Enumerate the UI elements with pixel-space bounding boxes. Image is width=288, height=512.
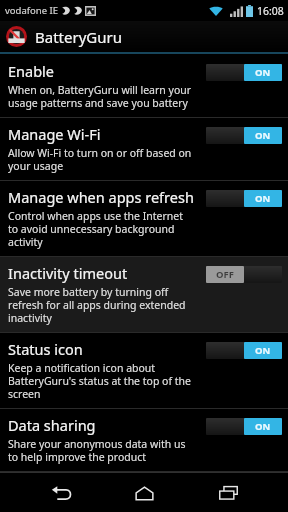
staticText: ON [255,66,271,79]
button[interactable]: Toggle on [206,64,282,81]
button[interactable]: Recent apps [205,476,251,510]
staticText: Share your anonymous data with us to hel… [8,437,186,464]
button[interactable]: Toggle on [206,190,282,207]
button[interactable]: Manage Wi-Fi [0,118,288,180]
button[interactable]: Manage when apps refresh [0,181,288,256]
staticText: Manage when apps refresh [8,187,194,207]
button[interactable]: Toggle on [206,342,282,359]
button[interactable]: Enable [0,55,288,117]
button[interactable]: Toggle off [206,266,282,283]
button[interactable]: Inactivity timeout [0,257,288,332]
staticText: OFF [216,268,234,281]
button[interactable]: Toggle on [206,127,282,144]
staticText: ON [255,420,271,433]
staticText: vodafone IE [5,4,58,17]
staticText: When on, BatteryGuru will learn your usa… [8,83,192,110]
staticText: Save more battery by turning off refresh… [8,285,186,325]
staticText: Data sharing [8,415,96,435]
staticText: 16:08 [257,4,284,18]
staticText: Inactivity timeout [8,263,128,283]
staticText: ON [255,344,271,357]
staticText: Allow Wi-Fi to turn on or off based on y… [8,146,192,173]
button[interactable]: Data sharing [0,409,288,471]
button[interactable]: Status icon [0,333,288,408]
staticText: BatteryGuru [35,27,122,47]
staticText: Keep a notification icon about BatteryGu… [8,361,191,401]
staticText: ON [255,129,271,142]
staticText: Manage Wi-Fi [8,124,101,144]
button[interactable]: Toggle on [206,418,282,435]
staticText: ON [255,192,271,205]
staticText: Enable [8,61,54,81]
button[interactable]: Home [121,476,167,510]
staticText: Control when apps use the Internet to av… [8,209,184,249]
staticText: Status icon [8,339,83,359]
button[interactable]: Back [38,476,84,510]
